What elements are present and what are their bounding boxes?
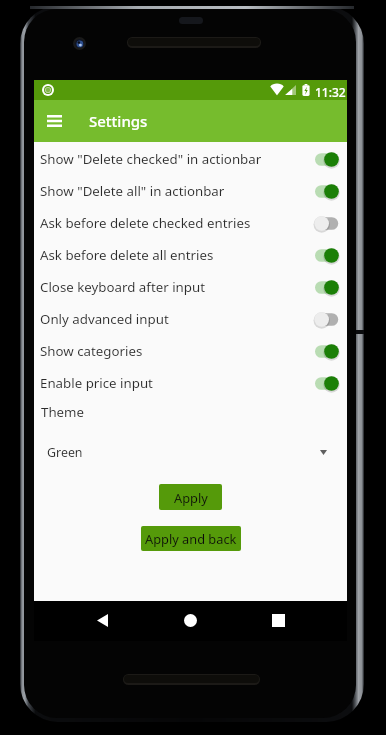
staticText: Close keyboard after input bbox=[40, 278, 315, 296]
button[interactable]: Enable price input bbox=[34, 367, 347, 399]
staticText: Show "Delete all" in actionbar bbox=[40, 182, 315, 200]
button[interactable]: Apply and back bbox=[141, 526, 241, 551]
staticText: Apply and back bbox=[145, 530, 237, 547]
button[interactable]: Recent apps bbox=[264, 606, 293, 635]
button[interactable]: Green bbox=[34, 439, 347, 466]
staticText: Show "Delete checked" in actionbar bbox=[40, 150, 315, 168]
button[interactable]: Show "Delete all" in actionbar bbox=[34, 175, 347, 207]
staticText: Enable price input bbox=[40, 374, 315, 392]
button[interactable]: Apply bbox=[159, 484, 222, 510]
button[interactable]: Home bbox=[176, 606, 205, 635]
staticText: Ask before delete checked entries bbox=[40, 214, 315, 232]
button[interactable]: Show categories bbox=[34, 335, 347, 367]
staticText: 11:32 bbox=[315, 84, 346, 100]
staticText: Only advanced input bbox=[40, 310, 315, 328]
staticText: Settings bbox=[89, 111, 148, 131]
button[interactable]: Ask before delete all entries bbox=[34, 239, 347, 271]
button[interactable]: Show "Delete checked" in actionbar bbox=[34, 143, 347, 175]
staticText: Apply bbox=[174, 489, 208, 506]
button[interactable]: Back bbox=[88, 606, 117, 635]
button[interactable]: Close keyboard after input bbox=[34, 271, 347, 303]
button[interactable]: Open navigation drawer bbox=[35, 102, 73, 140]
staticText: Show categories bbox=[40, 342, 315, 360]
button[interactable]: Only advanced input bbox=[34, 303, 347, 335]
staticText: Green bbox=[47, 444, 320, 461]
button[interactable]: Ask before delete checked entries bbox=[34, 207, 347, 239]
staticText: Ask before delete all entries bbox=[40, 246, 315, 264]
staticText: Theme bbox=[41, 403, 85, 421]
